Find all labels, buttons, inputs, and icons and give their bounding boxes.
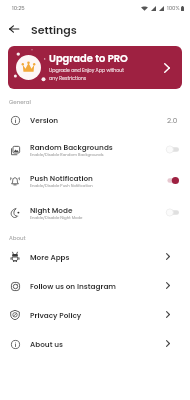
staticText: Upgrade to PRO xyxy=(49,52,128,66)
button[interactable]: Toggle off xyxy=(164,208,179,217)
button[interactable]: Toggle on xyxy=(164,176,179,185)
staticText: Night Mode xyxy=(30,205,73,215)
button[interactable]: Push Notification xyxy=(0,168,190,193)
staticText: 100% xyxy=(167,4,180,12)
button[interactable]: Upgrade to PRO xyxy=(8,46,182,89)
staticText: Random Backgrounds xyxy=(30,142,113,152)
staticText: 2.0 xyxy=(167,115,178,125)
button[interactable]: Version xyxy=(0,107,190,132)
staticText: About xyxy=(9,234,26,242)
button[interactable]: Toggle off xyxy=(164,145,179,154)
staticText: More Apps xyxy=(30,252,70,262)
button[interactable]: Follow us on Instagram xyxy=(0,273,190,298)
button[interactable]: Night Mode xyxy=(0,200,190,225)
staticText: Privacy Policy xyxy=(30,310,82,320)
button[interactable]: Privacy Policy xyxy=(0,302,190,327)
staticText: Enable/Disable Push Notification xyxy=(30,183,93,188)
staticText: 10:25 xyxy=(12,4,25,12)
staticText: Follow us on Instagram xyxy=(30,281,116,291)
staticText: Settings xyxy=(31,22,77,37)
button[interactable]: Random Backgrounds xyxy=(0,137,190,162)
button[interactable]: About us xyxy=(0,331,190,356)
staticText: Upgrade and Enjoy App without any Restri… xyxy=(49,67,125,82)
staticText: Push Notification xyxy=(30,173,93,183)
staticText: Version xyxy=(30,115,59,125)
staticText: Enable/Disable Night Mode xyxy=(30,215,83,220)
button[interactable]: More Apps xyxy=(0,244,190,269)
staticText: Enable/Disable Random Backgrounds xyxy=(30,152,104,157)
staticText: About us xyxy=(30,339,64,349)
button[interactable]: Back xyxy=(0,16,28,42)
staticText: General xyxy=(9,98,31,106)
